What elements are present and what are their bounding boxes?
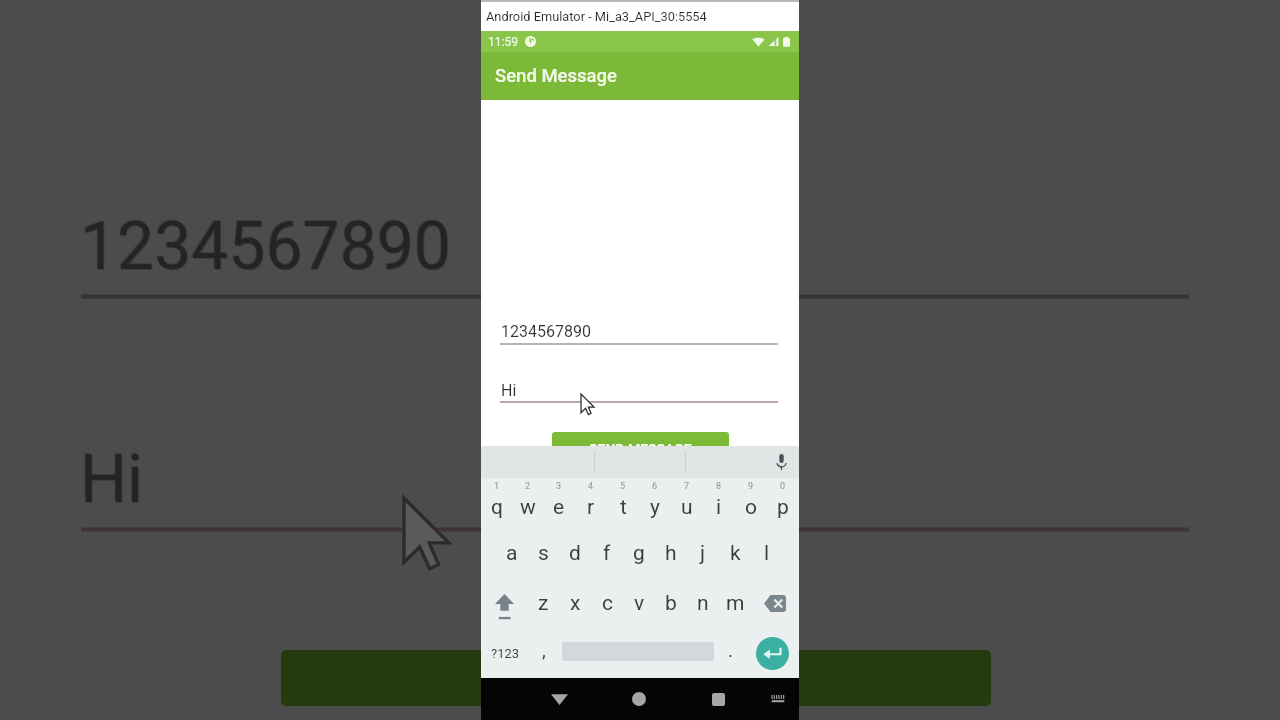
staticText: c <box>602 591 613 616</box>
button[interactable]: n <box>687 578 719 628</box>
staticText: Hi <box>80 441 144 518</box>
button[interactable]: Send Message <box>481 52 799 100</box>
staticText: 1234567890 <box>501 322 591 341</box>
button[interactable]: j <box>687 528 719 578</box>
staticText: h <box>665 541 677 566</box>
staticText: 11:59 <box>488 35 518 49</box>
button[interactable]: Back <box>539 678 579 720</box>
staticText: f <box>603 541 611 566</box>
staticText: ?123 <box>491 646 520 661</box>
staticText: a <box>506 541 518 566</box>
staticText: p <box>777 495 789 520</box>
button[interactable]: f <box>591 528 623 578</box>
staticText: Hi <box>81 442 145 519</box>
button[interactable]: b <box>655 578 687 628</box>
staticText: 1234567890 <box>80 208 451 285</box>
staticText: w <box>520 495 536 520</box>
button[interactable]: 0 <box>767 478 799 528</box>
staticText: , <box>542 639 546 661</box>
staticText: 1234567890 <box>79 207 450 284</box>
staticText: i <box>716 495 722 520</box>
button[interactable]: g <box>623 528 655 578</box>
button[interactable]: 3 <box>543 478 575 528</box>
button[interactable]: c <box>591 578 623 628</box>
staticText: 2 <box>525 481 531 492</box>
button[interactable]: 1 <box>481 478 512 528</box>
button[interactable]: x <box>559 578 591 628</box>
button[interactable]: d <box>559 528 591 578</box>
button[interactable]: Voice input <box>686 446 799 478</box>
staticText: m <box>726 591 745 616</box>
staticText: u <box>681 495 693 520</box>
staticText: o <box>745 495 757 520</box>
button[interactable]: l <box>751 528 783 578</box>
staticText: d <box>569 541 581 566</box>
staticText: 1234567890 <box>81 209 452 286</box>
button[interactable]: Space <box>559 628 716 678</box>
staticText: Android Emulator - Mi_a3_API_30:5554 <box>486 9 707 24</box>
button[interactable]: 8 <box>703 478 735 528</box>
staticText: 6 <box>652 481 658 492</box>
staticText: z <box>538 591 549 616</box>
staticText: v <box>634 591 645 616</box>
staticText: Send Message <box>495 65 617 87</box>
staticText: t <box>620 495 627 520</box>
button[interactable]: v <box>623 578 655 628</box>
staticText: Hi <box>79 440 143 517</box>
button[interactable]: Keyboard <box>758 678 798 720</box>
button[interactable]: 7 <box>671 478 703 528</box>
button[interactable]: z <box>528 578 559 628</box>
staticText: 7 <box>684 481 690 492</box>
staticText: r <box>587 495 595 520</box>
staticText: e <box>553 495 565 520</box>
button[interactable]: k <box>719 528 751 578</box>
button[interactable]: SEND MESSAGE <box>552 432 729 468</box>
staticText: . <box>728 639 734 661</box>
button[interactable]: 5 <box>607 478 639 528</box>
staticText: Hi <box>501 381 517 400</box>
staticText: q <box>491 495 503 520</box>
staticText: 0 <box>780 481 786 492</box>
staticText: 1 <box>494 481 500 492</box>
button[interactable]: 6 <box>639 478 671 528</box>
button[interactable]: a <box>496 528 527 578</box>
button[interactable]: Enter <box>746 628 799 678</box>
staticText: 3 <box>556 481 562 492</box>
button[interactable]: m <box>719 578 751 628</box>
staticText: SEND MESSAGE <box>589 442 692 458</box>
button[interactable]: h <box>655 528 687 578</box>
staticText: k <box>730 541 741 566</box>
button[interactable]: 9 <box>735 478 767 528</box>
button[interactable]: . <box>716 628 746 678</box>
staticText: b <box>665 591 677 616</box>
staticText: l <box>764 541 770 566</box>
button[interactable]: Recents <box>698 678 738 720</box>
button[interactable]: , <box>529 628 559 678</box>
staticText: n <box>697 591 709 616</box>
staticText: j <box>700 541 706 566</box>
staticText: 5 <box>620 481 626 492</box>
button[interactable]: Home <box>619 678 659 720</box>
button[interactable]: Backspace <box>751 578 799 628</box>
staticText: 9 <box>748 481 754 492</box>
staticText: s <box>538 541 549 566</box>
staticText: 8 <box>716 481 722 492</box>
button[interactable]: ?123 <box>481 628 529 678</box>
button[interactable]: 4 <box>575 478 607 528</box>
button[interactable]: Shift <box>481 578 528 628</box>
staticText: 4 <box>588 481 594 492</box>
staticText: x <box>570 591 581 616</box>
staticText: y <box>650 495 660 520</box>
button[interactable]: s <box>527 528 559 578</box>
button[interactable]: 2 <box>512 478 543 528</box>
staticText: g <box>633 541 645 566</box>
